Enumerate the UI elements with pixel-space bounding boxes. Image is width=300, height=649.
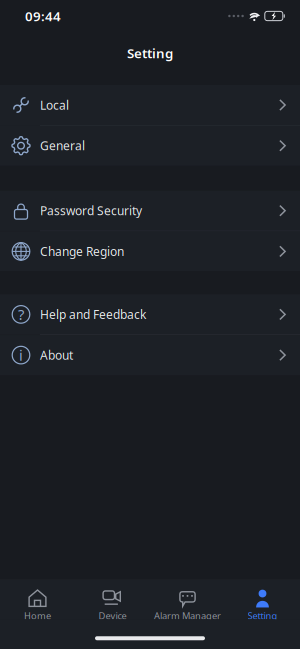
- button[interactable]: Device: [75, 580, 150, 619]
- button[interactable]: Alarm Manager: [150, 580, 225, 619]
- staticText: About: [40, 347, 73, 363]
- staticText: Help and Feedback: [40, 306, 146, 322]
- staticText: ?: [18, 305, 24, 324]
- staticText: General: [40, 138, 85, 154]
- button[interactable]: Setting: [225, 580, 300, 619]
- button[interactable]: Password Security: [0, 191, 300, 231]
- staticText: i: [19, 345, 23, 365]
- staticText: Device: [98, 610, 126, 622]
- button[interactable]: Local: [0, 85, 300, 125]
- button[interactable]: General: [0, 126, 300, 166]
- staticText: Change Region: [40, 243, 124, 259]
- button[interactable]: Home: [0, 580, 75, 619]
- staticText: Setting: [247, 610, 277, 622]
- staticText: Local: [40, 97, 69, 113]
- staticText: 09:44: [25, 7, 61, 25]
- staticText: Password Security: [40, 203, 142, 219]
- staticText: Setting: [127, 44, 173, 62]
- staticText: Home: [24, 610, 51, 622]
- button[interactable]: i: [0, 335, 300, 375]
- staticText: Alarm Manager: [154, 610, 221, 622]
- button[interactable]: ?: [0, 294, 300, 334]
- button[interactable]: Change Region: [0, 231, 300, 271]
